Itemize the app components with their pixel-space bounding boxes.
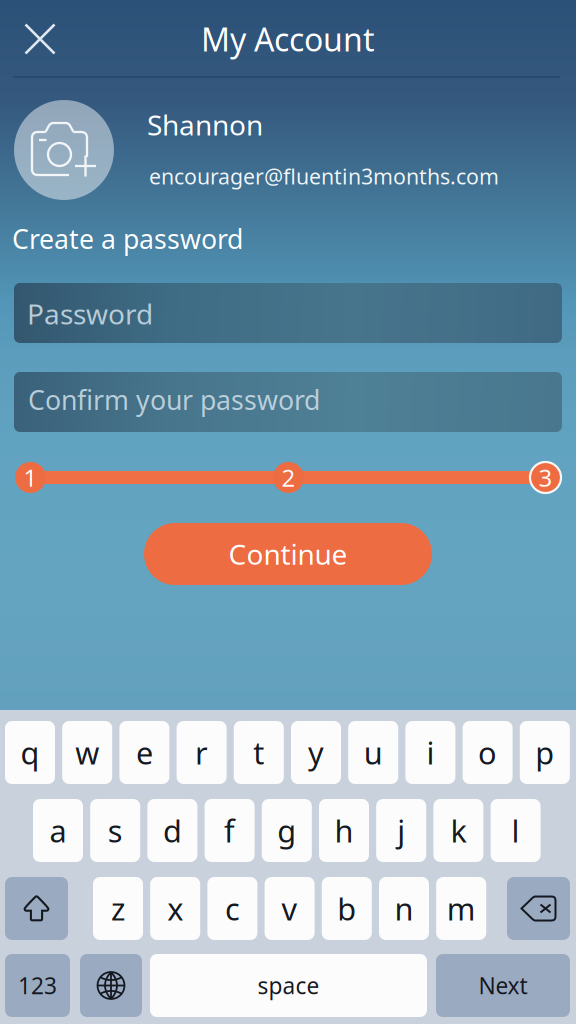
button[interactable]: q [5, 721, 55, 784]
staticText: Next [478, 970, 527, 1000]
button[interactable]: f [205, 799, 255, 862]
button[interactable]: l [491, 799, 541, 862]
button[interactable]: Change profile photo [14, 100, 114, 200]
staticText: n [394, 888, 413, 929]
staticText: a [49, 810, 66, 851]
staticText: u [364, 732, 383, 773]
staticText: Continue [228, 535, 347, 573]
staticText: 3 [538, 462, 552, 493]
staticText: o [478, 732, 497, 773]
staticText: r [195, 732, 208, 773]
button[interactable]: y [291, 721, 341, 784]
button[interactable]: g [262, 799, 312, 862]
staticText: z [111, 888, 125, 929]
button[interactable]: u [348, 721, 398, 784]
staticText: j [397, 810, 405, 851]
staticText: My Account [201, 18, 375, 60]
staticText: w [75, 732, 99, 773]
button[interactable]: Delete [507, 877, 570, 940]
button[interactable]: Next keyboard [80, 954, 142, 1017]
staticText: space [257, 970, 319, 1000]
button[interactable]: v [265, 877, 315, 940]
staticText: g [277, 810, 296, 851]
staticText: 2 [281, 462, 295, 493]
staticText: 123 [18, 970, 57, 1000]
staticText: p [535, 732, 554, 773]
staticText: Password [27, 295, 153, 332]
staticText: encourager@fluentin3months.com [149, 162, 499, 190]
button[interactable]: m [436, 877, 486, 940]
button[interactable]: k [433, 799, 483, 862]
staticText: k [450, 810, 466, 851]
staticText: d [163, 810, 182, 851]
button[interactable]: 123 [5, 954, 70, 1017]
staticText: Shannon [147, 106, 263, 143]
button[interactable]: Confirm your password [14, 372, 562, 432]
button[interactable]: i [405, 721, 455, 784]
staticText: Confirm your password [28, 382, 320, 417]
button[interactable]: d [147, 799, 197, 862]
button[interactable]: a [33, 799, 83, 862]
staticText: m [447, 888, 476, 929]
staticText: y [308, 732, 324, 773]
staticText: h [334, 810, 353, 851]
button[interactable]: e [119, 721, 169, 784]
staticText: t [253, 732, 264, 773]
staticText: e [136, 732, 153, 773]
staticText: f [224, 810, 235, 851]
staticText: c [225, 888, 240, 929]
button[interactable]: t [234, 721, 284, 784]
button[interactable]: s [90, 799, 140, 862]
button[interactable]: r [177, 721, 227, 784]
staticText: i [426, 732, 434, 773]
button[interactable]: o [463, 721, 513, 784]
button[interactable]: Continue [144, 523, 432, 585]
staticText: q [20, 732, 39, 773]
staticText: b [337, 888, 356, 929]
button[interactable]: c [207, 877, 257, 940]
button[interactable]: Password [14, 283, 562, 343]
staticText: l [512, 810, 520, 851]
button[interactable]: n [379, 877, 429, 940]
button[interactable]: h [319, 799, 369, 862]
button[interactable]: z [93, 877, 143, 940]
button[interactable]: Next [436, 954, 570, 1017]
staticText: v [282, 888, 298, 929]
staticText: Create a password [12, 221, 243, 256]
button[interactable]: Close [9, 9, 71, 69]
button[interactable]: b [322, 877, 372, 940]
button[interactable]: Shift [5, 877, 68, 940]
button[interactable]: w [62, 721, 112, 784]
button[interactable]: space [150, 954, 427, 1017]
button[interactable]: x [150, 877, 200, 940]
staticText: x [167, 888, 183, 929]
staticText: s [108, 810, 123, 851]
button[interactable]: j [376, 799, 426, 862]
staticText: 1 [23, 462, 37, 493]
button[interactable]: p [520, 721, 570, 784]
